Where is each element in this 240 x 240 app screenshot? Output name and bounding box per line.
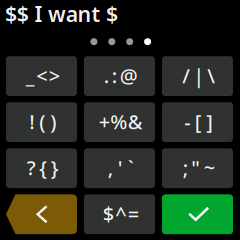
staticText: _<>	[26, 62, 60, 89]
button[interactable]: ;"~	[162, 148, 233, 188]
staticText: .:@	[104, 62, 138, 89]
staticText: -[]	[184, 108, 213, 135]
button[interactable]: ,'`	[84, 148, 155, 188]
staticText: !()	[29, 108, 56, 135]
staticText: /|\	[182, 62, 215, 89]
button[interactable]: !()	[6, 102, 77, 142]
staticText: ;"~	[183, 154, 215, 181]
button[interactable]: ?{}	[6, 148, 77, 188]
staticText: +%&	[99, 108, 143, 135]
staticText: ?{}	[27, 154, 59, 181]
button[interactable]: +%&	[84, 102, 155, 142]
button[interactable]: $^=	[84, 194, 155, 234]
button[interactable]: Delete	[6, 194, 77, 234]
button[interactable]: -[]	[162, 102, 233, 142]
button[interactable]: Done	[162, 194, 233, 234]
button[interactable]: _<>	[6, 56, 77, 96]
staticText: ,'`	[108, 154, 134, 181]
staticText: $^=	[103, 200, 139, 227]
button[interactable]: .:@	[84, 56, 155, 96]
button[interactable]: /|\	[162, 56, 233, 96]
staticText: $$ I want $	[5, 0, 118, 28]
